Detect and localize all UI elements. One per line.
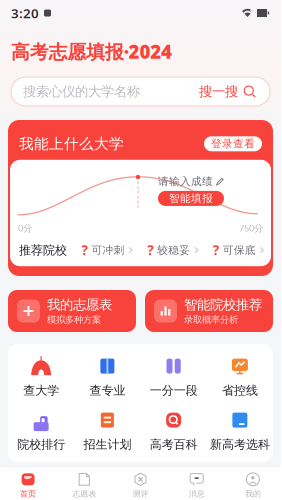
staticText: 首页	[20, 489, 36, 499]
staticText: 查专业	[89, 383, 125, 398]
button[interactable]: 新高考选科	[207, 406, 273, 454]
staticText: 请输入成绩	[158, 175, 213, 188]
button[interactable]: 院校排行	[8, 406, 74, 454]
staticText: 智能院校推荐	[184, 297, 262, 313]
button[interactable]: 我的志愿表	[8, 290, 136, 332]
staticText: 录取概率分析	[184, 314, 238, 325]
button[interactable]: 一分一段	[140, 352, 207, 400]
button[interactable]: 消息	[169, 469, 225, 500]
staticText: ?	[81, 241, 87, 259]
staticText: 智能填报	[169, 192, 213, 205]
staticText: ?	[147, 241, 153, 259]
button[interactable]: 登录查看	[204, 136, 262, 151]
staticText: 查大学	[23, 383, 59, 398]
button[interactable]: ?	[147, 241, 198, 259]
button[interactable]: 智能院校推荐	[145, 290, 273, 332]
button[interactable]: 首页	[0, 469, 56, 500]
staticText: 搜一搜	[199, 83, 238, 100]
button[interactable]: 搜索心仪的大学名称	[11, 77, 270, 106]
staticText: 志愿表	[72, 489, 96, 499]
button[interactable]: 高考百科	[140, 406, 207, 454]
staticText: 搜索心仪的大学名称	[23, 83, 140, 100]
button[interactable]: ?	[81, 241, 133, 259]
button[interactable]: 查专业	[74, 352, 141, 400]
staticText: 0分	[18, 222, 32, 234]
button[interactable]: ?	[213, 241, 264, 259]
staticText: 高考志愿填报·2024	[11, 39, 172, 64]
staticText: 登录查看	[211, 137, 255, 150]
staticText: 3:20	[11, 4, 39, 22]
button[interactable]: 测评	[112, 469, 169, 500]
staticText: 省控线	[222, 383, 258, 398]
staticText: 测评	[132, 489, 148, 499]
button[interactable]: 我的	[225, 469, 281, 500]
staticText: 推荐院校	[19, 243, 67, 257]
staticText: 招生计划	[83, 437, 131, 452]
button[interactable]: 省控线	[207, 352, 273, 400]
button[interactable]: 志愿表	[56, 469, 112, 500]
button[interactable]: 智能填报	[158, 191, 224, 206]
staticText: 较稳妥	[157, 244, 190, 257]
button[interactable]: 查大学	[8, 352, 74, 400]
staticText: 新高考选科	[210, 437, 270, 452]
staticText: 我的	[245, 489, 261, 499]
staticText: 高考百科	[150, 437, 198, 452]
staticText: 可保底	[223, 244, 256, 257]
staticText: 一分一段	[150, 383, 198, 398]
button[interactable]: 招生计划	[74, 406, 141, 454]
staticText: 院校排行	[17, 437, 65, 452]
staticText: 我能上什么大学	[19, 135, 124, 153]
staticText: 750分	[239, 222, 263, 234]
staticText: 我的志愿表	[47, 297, 112, 313]
staticText: ?	[213, 241, 219, 259]
staticText: 可冲刺	[91, 244, 124, 257]
staticText: 消息	[189, 489, 205, 499]
staticText: 模拟多种方案	[47, 314, 101, 325]
